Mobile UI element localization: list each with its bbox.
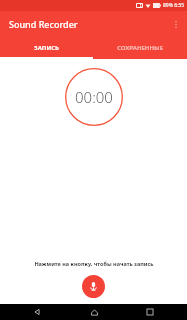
button[interactable]: ЗАПИСЬ [0, 37, 93, 59]
staticText: 00:00 [75, 87, 113, 107]
staticText: СОХРАНЕННЫЕ [117, 44, 163, 52]
button[interactable]: More options [165, 13, 187, 35]
button[interactable]: Back [17, 304, 57, 320]
button[interactable]: Recent apps [130, 304, 170, 320]
button[interactable]: СОХРАНЕННЫЕ [93, 37, 187, 59]
staticText: Sound Recorder [9, 18, 78, 30]
staticText: ЗАПИСЬ [34, 44, 59, 52]
staticText: 89% 6:55 [163, 2, 185, 9]
staticText: Нажмите на кнопку, чтобы начать запись [34, 260, 154, 267]
button[interactable]: Start recording [82, 275, 105, 298]
button[interactable]: Home [74, 304, 114, 320]
